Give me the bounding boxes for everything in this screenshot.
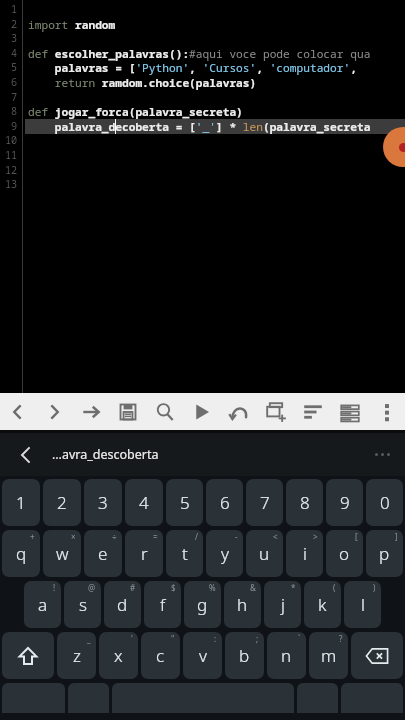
button[interactable]: More options	[359, 433, 405, 476]
button[interactable]: d	[104, 581, 141, 628]
button[interactable]: Back	[0, 433, 52, 476]
button[interactable]: z	[57, 632, 96, 679]
button[interactable]: s	[64, 581, 101, 628]
button[interactable]: 4	[125, 479, 163, 526]
staticText: z	[73, 644, 81, 667]
button[interactable]: 8	[286, 479, 323, 526]
staticText: 7	[260, 491, 270, 514]
button[interactable]: a	[24, 581, 61, 628]
staticText: f	[160, 593, 166, 616]
button[interactable]: Key	[68, 683, 109, 713]
staticText: ×	[71, 531, 76, 542]
button[interactable]: 3	[84, 479, 122, 526]
button[interactable]: m	[309, 632, 348, 679]
staticText: v	[199, 644, 207, 667]
button[interactable]: q	[2, 530, 40, 577]
staticText: …avra_descoberta	[52, 446, 159, 463]
button[interactable]: y	[206, 530, 243, 577]
button[interactable]: Shift	[2, 632, 54, 679]
staticText: 4	[139, 491, 149, 514]
button[interactable]: w	[43, 530, 81, 577]
button[interactable]: p	[366, 530, 403, 577]
staticText: i	[303, 542, 307, 565]
staticText: c	[156, 644, 165, 667]
staticText: 13	[5, 177, 18, 191]
staticText: def jogar_forca(palavra_secreta)	[28, 104, 405, 119]
staticText: [	[355, 531, 358, 542]
button[interactable]: 1	[2, 479, 40, 526]
staticText: ;	[256, 633, 259, 644]
button[interactable]: e	[84, 530, 122, 577]
staticText: ]	[395, 531, 398, 542]
staticText: y	[221, 542, 229, 565]
staticText: <	[273, 531, 278, 542]
staticText: def escolher_palavras():#aqui voce pode …	[28, 46, 405, 61]
staticText: "	[171, 633, 175, 644]
staticText: return ramdom.choice(palavras)	[28, 75, 405, 90]
button[interactable]: b	[225, 632, 264, 679]
staticText: m	[321, 644, 337, 667]
button[interactable]: t	[166, 530, 203, 577]
staticText: !	[53, 582, 56, 593]
button[interactable]: More	[368, 393, 405, 430]
button[interactable]: c	[141, 632, 180, 679]
button[interactable]: i	[286, 530, 323, 577]
button[interactable]: Lines	[331, 393, 368, 430]
button[interactable]: Undo	[220, 393, 257, 430]
button[interactable]: h	[224, 581, 261, 628]
staticText: ?	[339, 633, 343, 644]
staticText: @	[88, 582, 96, 593]
button[interactable]: l	[344, 581, 381, 628]
staticText: 6	[11, 75, 18, 89]
staticText: 12	[5, 163, 18, 177]
button[interactable]: 6	[206, 479, 243, 526]
staticText: %	[209, 582, 216, 593]
button[interactable]: Run	[183, 393, 220, 430]
staticText: `	[298, 633, 301, 644]
button[interactable]: 2	[43, 479, 81, 526]
button[interactable]: …avra_descoberta	[52, 433, 359, 476]
button[interactable]: u	[246, 530, 283, 577]
staticText: :	[214, 633, 217, 644]
button[interactable]: j	[264, 581, 301, 628]
button[interactable]: n	[267, 632, 306, 679]
staticText: 8	[11, 104, 18, 118]
button[interactable]: Code editor	[0, 0, 405, 393]
button[interactable]: Tab	[72, 393, 109, 430]
button[interactable]: Floating action	[383, 127, 405, 167]
staticText: h	[237, 593, 248, 616]
button[interactable]: New file	[257, 393, 294, 430]
staticText: l	[361, 593, 365, 616]
staticText: 2	[57, 491, 67, 514]
button[interactable]: 5	[166, 479, 203, 526]
button[interactable]: v	[183, 632, 222, 679]
staticText: '	[131, 633, 133, 644]
button[interactable]: 7	[246, 479, 283, 526]
staticText: 3	[98, 491, 108, 514]
button[interactable]: r	[125, 530, 163, 577]
staticText: 6	[220, 491, 230, 514]
staticText: $	[171, 582, 176, 593]
button[interactable]: x	[99, 632, 138, 679]
button[interactable]: o	[326, 530, 363, 577]
button[interactable]: Key	[297, 683, 338, 713]
staticText: x	[114, 644, 123, 667]
button[interactable]: 9	[326, 479, 363, 526]
button[interactable]: g	[184, 581, 221, 628]
button[interactable]: f	[144, 581, 181, 628]
staticText: 8	[300, 491, 310, 514]
button[interactable]: k	[304, 581, 341, 628]
button[interactable]: Next	[36, 393, 72, 430]
staticText: g	[197, 593, 208, 616]
button[interactable]: Previous	[0, 393, 36, 430]
staticText: 9	[340, 491, 350, 514]
button[interactable]: Format	[294, 393, 331, 430]
button[interactable]: Search	[146, 393, 183, 430]
button[interactable]: 0	[366, 479, 403, 526]
button[interactable]: Backspace	[351, 632, 403, 679]
button[interactable]: Save	[109, 393, 146, 430]
staticText: t	[182, 542, 188, 565]
